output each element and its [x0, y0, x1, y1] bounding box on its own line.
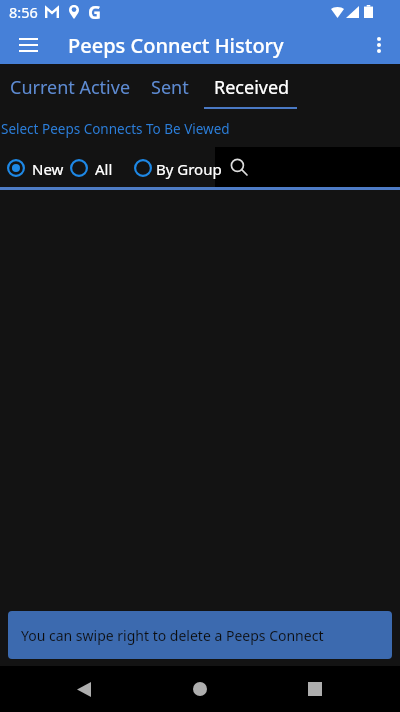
staticText: New [32, 159, 64, 179]
staticText: Received [214, 75, 290, 100]
staticText: 8:56 [9, 2, 38, 22]
button[interactable] [67, 152, 162, 181]
button[interactable]: More options [357, 25, 400, 64]
staticText: Peeps Connect History [68, 32, 284, 59]
button[interactable] [131, 152, 223, 181]
button[interactable]: Current Active [0, 64, 140, 110]
staticText: By Group [156, 159, 222, 179]
button[interactable]: Received [200, 64, 304, 110]
staticText: You can swipe right to delete a Peeps Co… [21, 626, 324, 645]
button[interactable]: Menu [6, 25, 50, 64]
button[interactable]: Sent [140, 64, 200, 110]
button[interactable] [4, 152, 99, 181]
staticText: Current Active [10, 75, 131, 100]
staticText: G [88, 0, 102, 25]
button[interactable]: You can swipe right to delete a Peeps Co… [8, 611, 392, 659]
button[interactable]: Search [215, 147, 400, 186]
staticText: Select Peeps Connects To Be Viewed [1, 120, 230, 138]
button[interactable]: Recents [291, 666, 339, 712]
button[interactable]: Back [60, 666, 108, 712]
button[interactable]: Home [176, 666, 224, 712]
staticText: All [95, 159, 113, 179]
staticText: Sent [151, 75, 189, 100]
